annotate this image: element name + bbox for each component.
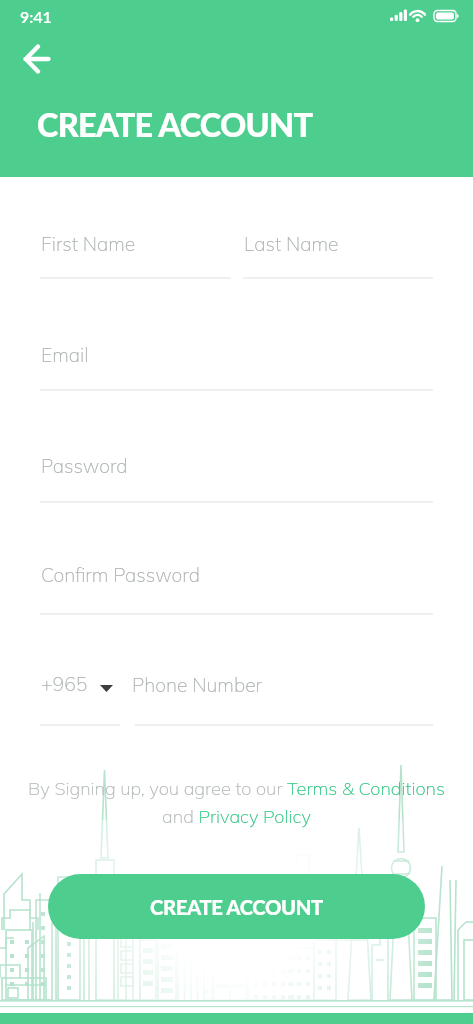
- staticText: By Signing up, you agree to our Terms & …: [28, 777, 445, 827]
- staticText: Confirm Password: [41, 563, 200, 587]
- staticText: Phone Number: [132, 673, 263, 697]
- button[interactable]: Country code +965: [36, 664, 124, 708]
- staticText: First Name: [41, 232, 136, 256]
- staticText: Last Name: [244, 232, 339, 256]
- button[interactable]: Back: [12, 37, 60, 81]
- staticText: 9:41: [20, 7, 52, 26]
- staticText: Email: [41, 343, 89, 367]
- staticText: Password: [41, 454, 128, 478]
- staticText: CREATE ACCOUNT: [37, 105, 313, 144]
- staticText: +965: [41, 672, 88, 696]
- staticText: CREATE ACCOUNT: [150, 895, 323, 919]
- button[interactable]: CREATE ACCOUNT: [48, 874, 425, 939]
